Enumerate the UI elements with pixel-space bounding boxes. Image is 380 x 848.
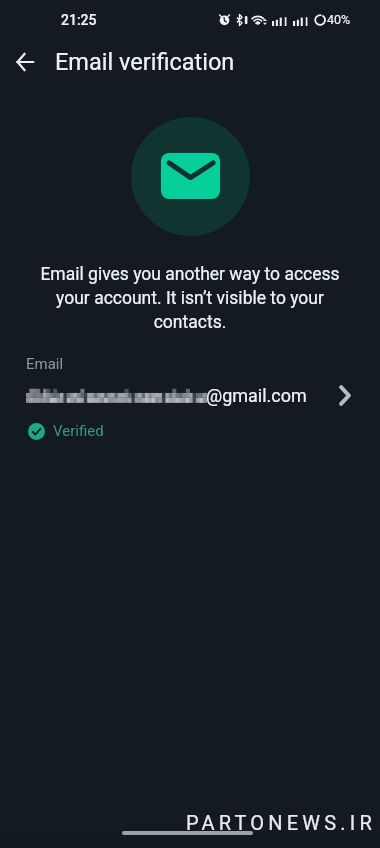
staticText: 40%: [327, 12, 351, 27]
staticText: @gmail.com: [206, 385, 307, 406]
staticText: PARTONEWS.IR: [186, 811, 376, 834]
staticText: Email: [26, 355, 64, 373]
staticText: Email verification: [55, 48, 235, 76]
staticText: Verified: [53, 422, 104, 440]
staticText: 21:25: [61, 12, 97, 28]
button[interactable]: Back: [3, 40, 47, 84]
staticText: Email gives you another way to access yo…: [34, 264, 346, 332]
button[interactable]: Email: [0, 355, 380, 440]
button[interactable]: Edit email: [329, 384, 361, 406]
staticText: GW: [64, 302, 117, 342]
